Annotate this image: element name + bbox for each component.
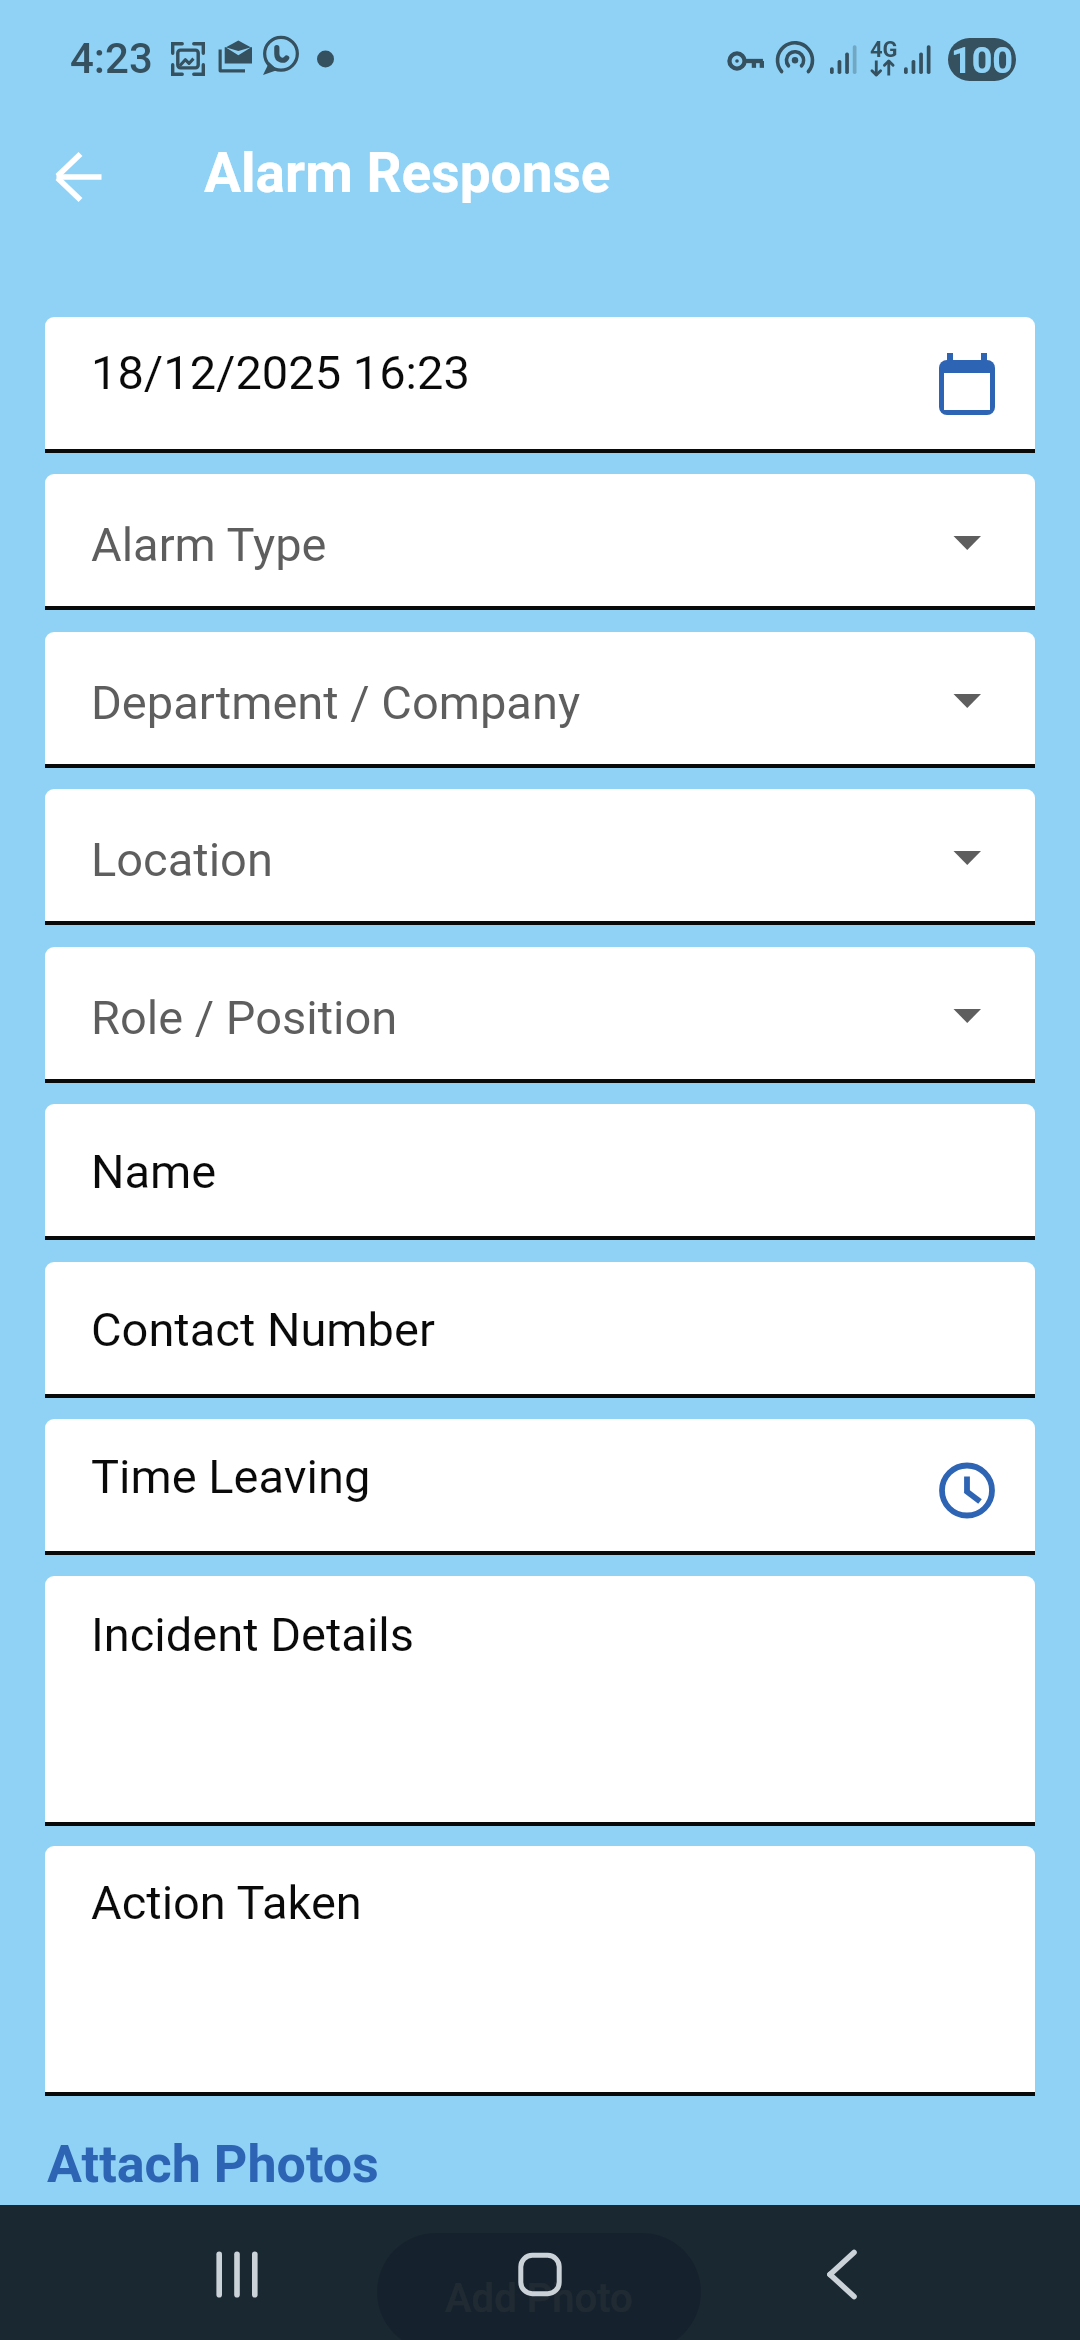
- button[interactable]: Open dropdown: [45, 947, 1035, 1083]
- button[interactable]: Role / Position: [45, 947, 1035, 1083]
- button[interactable]: Open dropdown: [45, 474, 1035, 610]
- staticText: Action Taken: [91, 1875, 362, 1930]
- button[interactable]: Incident Details: [45, 1576, 1035, 1826]
- button[interactable]: Action Taken: [45, 1846, 1035, 2096]
- staticText: 18/12/2025 16:23: [91, 345, 470, 400]
- staticText: 4G: [870, 37, 898, 63]
- staticText: Incident Details: [91, 1607, 415, 1662]
- button[interactable]: 18/12/2025 16:23: [45, 317, 1035, 453]
- button[interactable]: Alarm Type: [45, 474, 1035, 610]
- staticText: Alarm Response: [204, 141, 611, 205]
- button[interactable]: Pick date: [45, 317, 1035, 453]
- staticText: Add Photo: [445, 2275, 633, 2322]
- staticText: Contact Number: [91, 1302, 435, 1357]
- button[interactable]: Name: [45, 1104, 1035, 1240]
- button[interactable]: Location: [45, 789, 1035, 925]
- staticText: Name: [91, 1144, 217, 1199]
- staticText: Time Leaving: [91, 1449, 371, 1504]
- button[interactable]: Department / Company: [45, 632, 1035, 768]
- button[interactable]: Add Photo: [377, 2233, 701, 2340]
- button[interactable]: Open dropdown: [45, 789, 1035, 925]
- button[interactable]: Pick time: [45, 1419, 1035, 1555]
- button[interactable]: Attach Photos: [47, 2134, 379, 2195]
- button[interactable]: Back: [785, 2218, 895, 2328]
- staticText: 100: [951, 40, 1013, 81]
- button[interactable]: Contact Number: [45, 1262, 1035, 1398]
- staticText: Location: [91, 832, 273, 887]
- staticText: Department / Company: [91, 675, 581, 730]
- button[interactable]: Recent apps: [182, 2218, 292, 2328]
- button[interactable]: Back: [30, 126, 126, 222]
- staticText: Alarm Type: [91, 517, 327, 572]
- staticText: Role / Position: [91, 990, 398, 1045]
- button[interactable]: Time Leaving: [45, 1419, 1035, 1555]
- staticText: 4:23: [70, 34, 153, 83]
- button[interactable]: Open dropdown: [45, 632, 1035, 768]
- button[interactable]: Home: [485, 2218, 595, 2328]
